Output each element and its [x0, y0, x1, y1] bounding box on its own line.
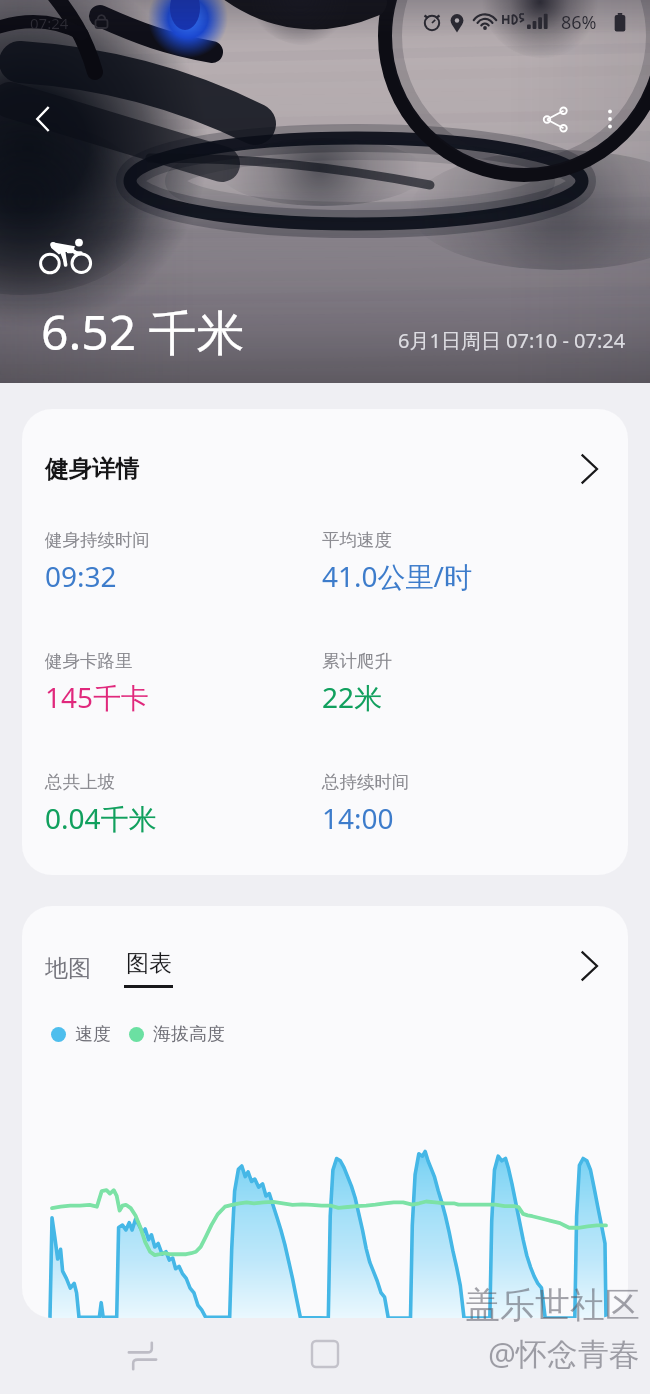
button[interactable]: 地图	[45, 946, 91, 991]
staticText: 145千卡	[45, 678, 150, 716]
staticText: 07:24	[30, 13, 69, 33]
staticText: 速度	[75, 1023, 111, 1046]
button[interactable]: 图表	[124, 949, 173, 988]
staticText: 0.04千米	[45, 799, 157, 837]
staticText: 22米	[322, 678, 383, 716]
button[interactable]: Home	[290, 1320, 360, 1388]
staticText: 41.0公里/时	[322, 557, 472, 595]
staticText: 总持续时间	[322, 771, 410, 793]
staticText: 6月1日周日 07:10 - 07:24	[398, 327, 626, 354]
staticText: 健身详情	[45, 454, 139, 484]
button[interactable]: More options	[584, 93, 636, 145]
button[interactable]: Open chart details	[573, 942, 606, 990]
button[interactable]: Share	[526, 90, 584, 148]
staticText: 总共上坡	[45, 771, 115, 793]
staticText: 09:32	[45, 557, 117, 595]
button[interactable]: Back	[14, 90, 72, 148]
staticText: @怀念青春	[488, 1332, 640, 1374]
staticText: 健身卡路里	[45, 650, 133, 672]
staticText: 平均速度	[322, 529, 392, 551]
staticText: 6.52 千米	[41, 299, 245, 365]
staticText: 地图	[45, 954, 91, 983]
staticText: 14:00	[322, 799, 394, 837]
button[interactable]: Recent apps	[106, 1322, 178, 1390]
staticText: 86%	[561, 10, 597, 35]
staticText: 图表	[126, 949, 172, 978]
staticText: 累计爬升	[322, 650, 392, 672]
staticText: 海拔高度	[153, 1023, 225, 1046]
button[interactable]: 健身详情	[22, 409, 628, 529]
staticText: 健身持续时间	[45, 529, 150, 551]
staticText: 盖乐世社区	[465, 1283, 640, 1327]
